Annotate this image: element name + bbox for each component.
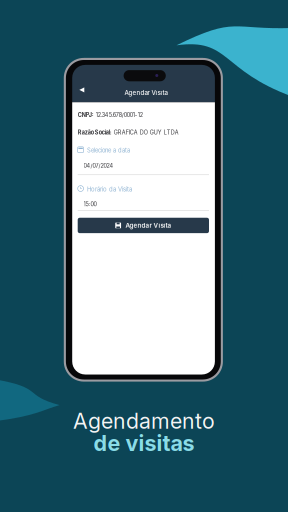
staticText: 15:00 xyxy=(84,201,97,207)
button[interactable]: Agendar Visita xyxy=(78,218,209,233)
staticText: Horário da Visita xyxy=(87,186,132,193)
staticText: Razão Social: GRAFICA DO GUY LTDA xyxy=(78,129,179,136)
button[interactable]: Back xyxy=(79,85,92,98)
staticText: Selecione a data xyxy=(87,147,130,154)
staticText: CNPJ: 12.345.678/0001-12 xyxy=(78,112,143,118)
staticText: Agendar Visita xyxy=(125,222,171,229)
staticText: Agendamento xyxy=(73,408,215,434)
staticText: 04/07/2024 xyxy=(84,162,114,169)
staticText: de visitas xyxy=(93,430,194,456)
staticText: Agendar Visita xyxy=(124,89,167,96)
